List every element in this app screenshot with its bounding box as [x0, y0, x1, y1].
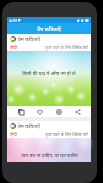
button[interactable]: Favourite — [34, 106, 45, 117]
button[interactable]: प्रेम कविताएँ — [7, 121, 91, 162]
staticText: प्यार कर ना चाहिए, पर कर कारिय — [21, 152, 78, 158]
button[interactable]: प्रेम कविताएँ — [7, 34, 91, 117]
button[interactable]: Share on WhatsApp — [53, 106, 64, 117]
staticText: हिंदी — [10, 132, 17, 138]
staticText: प्रेम कविताएँ — [18, 36, 40, 43]
staticText: प्रेम कविताएँ — [37, 25, 61, 32]
staticText: कुछ पढ़ने के लिए क्लिक करें — [45, 45, 88, 51]
button[interactable]: Copy — [15, 106, 26, 117]
staticText: किसी की याद में आँख नम हो तो — [22, 70, 76, 76]
staticText: 4:03 — [9, 18, 17, 23]
staticText: हिंदी — [10, 45, 17, 51]
staticText: प्रेम कविताएँ — [18, 123, 40, 130]
button[interactable]: Share — [72, 106, 83, 117]
staticText: कुछ पढ़ने के लिए क्लिक करें — [45, 132, 88, 138]
